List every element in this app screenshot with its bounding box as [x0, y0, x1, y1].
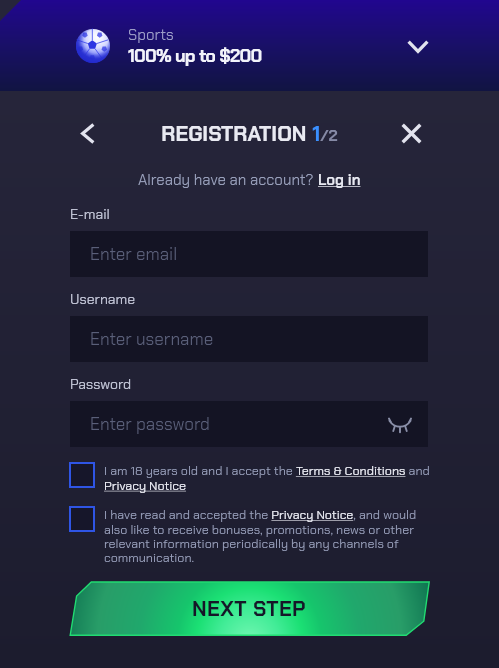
button[interactable]: Show password: [386, 410, 414, 438]
button[interactable]: Back: [73, 118, 103, 148]
button[interactable]: Enter password: [70, 401, 428, 447]
button[interactable]: Enter email: [70, 231, 428, 277]
staticText: Already have an account?: [138, 170, 318, 190]
staticText: Password: [70, 375, 132, 393]
staticText: Username: [70, 290, 136, 308]
button[interactable]: Expand: [403, 31, 433, 61]
button[interactable]: Enter username: [70, 316, 428, 362]
button[interactable]: Close: [396, 118, 426, 148]
staticText: I am 18 years old and I accept the Terms…: [104, 463, 436, 494]
staticText: Enter password: [90, 413, 210, 435]
button[interactable]: I have read and accepted the Privacy Not…: [70, 507, 428, 566]
staticText: REGISTRATION 1/2: [0, 120, 499, 147]
staticText: Enter username: [90, 328, 214, 350]
button[interactable]: Log in: [318, 170, 361, 190]
staticText: Enter email: [90, 243, 178, 265]
button[interactable]: Sports: [0, 0, 499, 91]
staticText: E-mail: [70, 205, 110, 223]
button[interactable]: NEXT STEP: [69, 581, 430, 636]
button[interactable]: I am 18 years old and I accept the Terms…: [70, 463, 428, 494]
staticText: NEXT STEP: [192, 595, 307, 622]
staticText: I have read and accepted the Privacy Not…: [104, 507, 436, 566]
staticText: Sports: [128, 25, 174, 45]
staticText: 100% up to $200: [128, 44, 262, 67]
